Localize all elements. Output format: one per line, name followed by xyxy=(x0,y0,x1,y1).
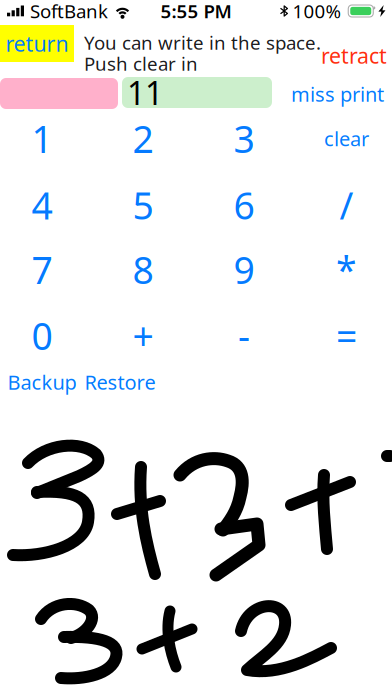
button[interactable]: miss print xyxy=(270,84,384,104)
staticText: Restore xyxy=(84,369,155,395)
staticText: 3 xyxy=(233,114,254,163)
staticText: Push clear in xyxy=(84,51,198,76)
staticText: 9 xyxy=(233,245,254,294)
staticText: 0 xyxy=(31,311,52,360)
staticText: 7 xyxy=(31,245,52,294)
staticText: 100% xyxy=(292,0,341,23)
staticText: 1 xyxy=(31,114,52,163)
staticText: 5:55 PM xyxy=(160,0,231,23)
staticText: 8 xyxy=(132,245,153,294)
button[interactable]: 2 xyxy=(95,106,191,170)
button[interactable]: = xyxy=(298,303,392,367)
staticText: - xyxy=(238,311,250,360)
button[interactable]: 6 xyxy=(196,173,292,237)
button[interactable]: return xyxy=(0,25,74,62)
button[interactable]: Backup xyxy=(6,371,78,393)
button[interactable]: * xyxy=(298,237,392,301)
staticText: * xyxy=(336,245,357,294)
button[interactable]: Restore xyxy=(84,371,156,393)
staticText: return xyxy=(5,29,68,58)
staticText: 6 xyxy=(233,180,254,230)
button[interactable]: 5 xyxy=(95,173,191,237)
staticText: You can write in the space. xyxy=(84,30,321,55)
button[interactable]: - xyxy=(196,303,292,367)
button[interactable]: + xyxy=(95,303,191,367)
staticText: miss print xyxy=(291,81,384,107)
staticText: retract xyxy=(321,41,387,70)
button[interactable]: 0 xyxy=(0,303,90,367)
staticText: clear xyxy=(324,125,369,152)
staticText: 2 xyxy=(132,114,153,163)
staticText: SoftBank xyxy=(30,0,108,23)
button[interactable]: 3 xyxy=(196,106,292,170)
button[interactable]: 8 xyxy=(95,237,191,301)
button[interactable]: retract xyxy=(300,45,387,66)
button[interactable]: 7 xyxy=(0,237,90,301)
staticText: 4 xyxy=(31,180,52,230)
button[interactable]: 4 xyxy=(0,173,90,237)
staticText: + xyxy=(132,311,153,360)
button[interactable]: clear xyxy=(298,106,392,170)
button[interactable]: 1 xyxy=(0,106,90,170)
button[interactable]: 9 xyxy=(196,237,292,301)
staticText: Backup xyxy=(7,369,76,395)
staticText: 5 xyxy=(132,180,153,230)
staticText: = xyxy=(336,311,357,360)
staticText: 11 xyxy=(127,71,163,114)
button[interactable]: / xyxy=(298,173,392,237)
staticText: / xyxy=(339,180,353,230)
